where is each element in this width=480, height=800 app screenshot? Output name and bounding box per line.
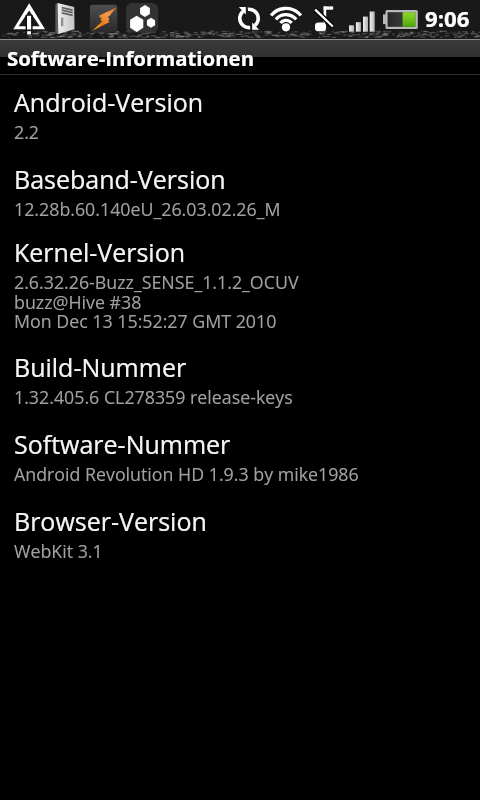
staticText: 12.28b.60.140eU_26.03.02.26_M (14, 197, 281, 221)
staticText: 2.6.32.26-Buzz_SENSE_1.1.2_OCUV (14, 270, 299, 294)
staticText: 2.2 (14, 120, 40, 144)
button[interactable] (0, 229, 480, 331)
button[interactable]: Software-Informationen (0, 39, 480, 75)
staticText: buzz@Hive #38 (14, 290, 142, 314)
staticText: Android-Version (14, 85, 204, 119)
staticText: WebKit 3.1 (14, 539, 103, 563)
staticText: 1.32.405.6 CL278359 release-keys (14, 385, 293, 409)
other: Status bar (0, 0, 480, 39)
staticText: Browser-Version (14, 504, 207, 538)
staticText: Software-Nummer (14, 427, 231, 461)
staticText: Build-Nummer (14, 350, 187, 384)
staticText: Android Revolution HD 1.9.3 by mike1986 (14, 462, 359, 486)
staticText: Kernel-Version (14, 235, 186, 269)
button[interactable] (0, 498, 480, 561)
button[interactable] (0, 421, 480, 484)
button[interactable] (0, 156, 480, 219)
staticText: Mon Dec 13 15:52:27 GMT 2010 (14, 309, 277, 333)
button[interactable] (0, 344, 480, 407)
staticText: Baseband-Version (14, 162, 226, 196)
staticText: 9:06 (425, 3, 470, 33)
staticText: Software-Informationen (7, 44, 255, 72)
button[interactable] (0, 79, 480, 142)
